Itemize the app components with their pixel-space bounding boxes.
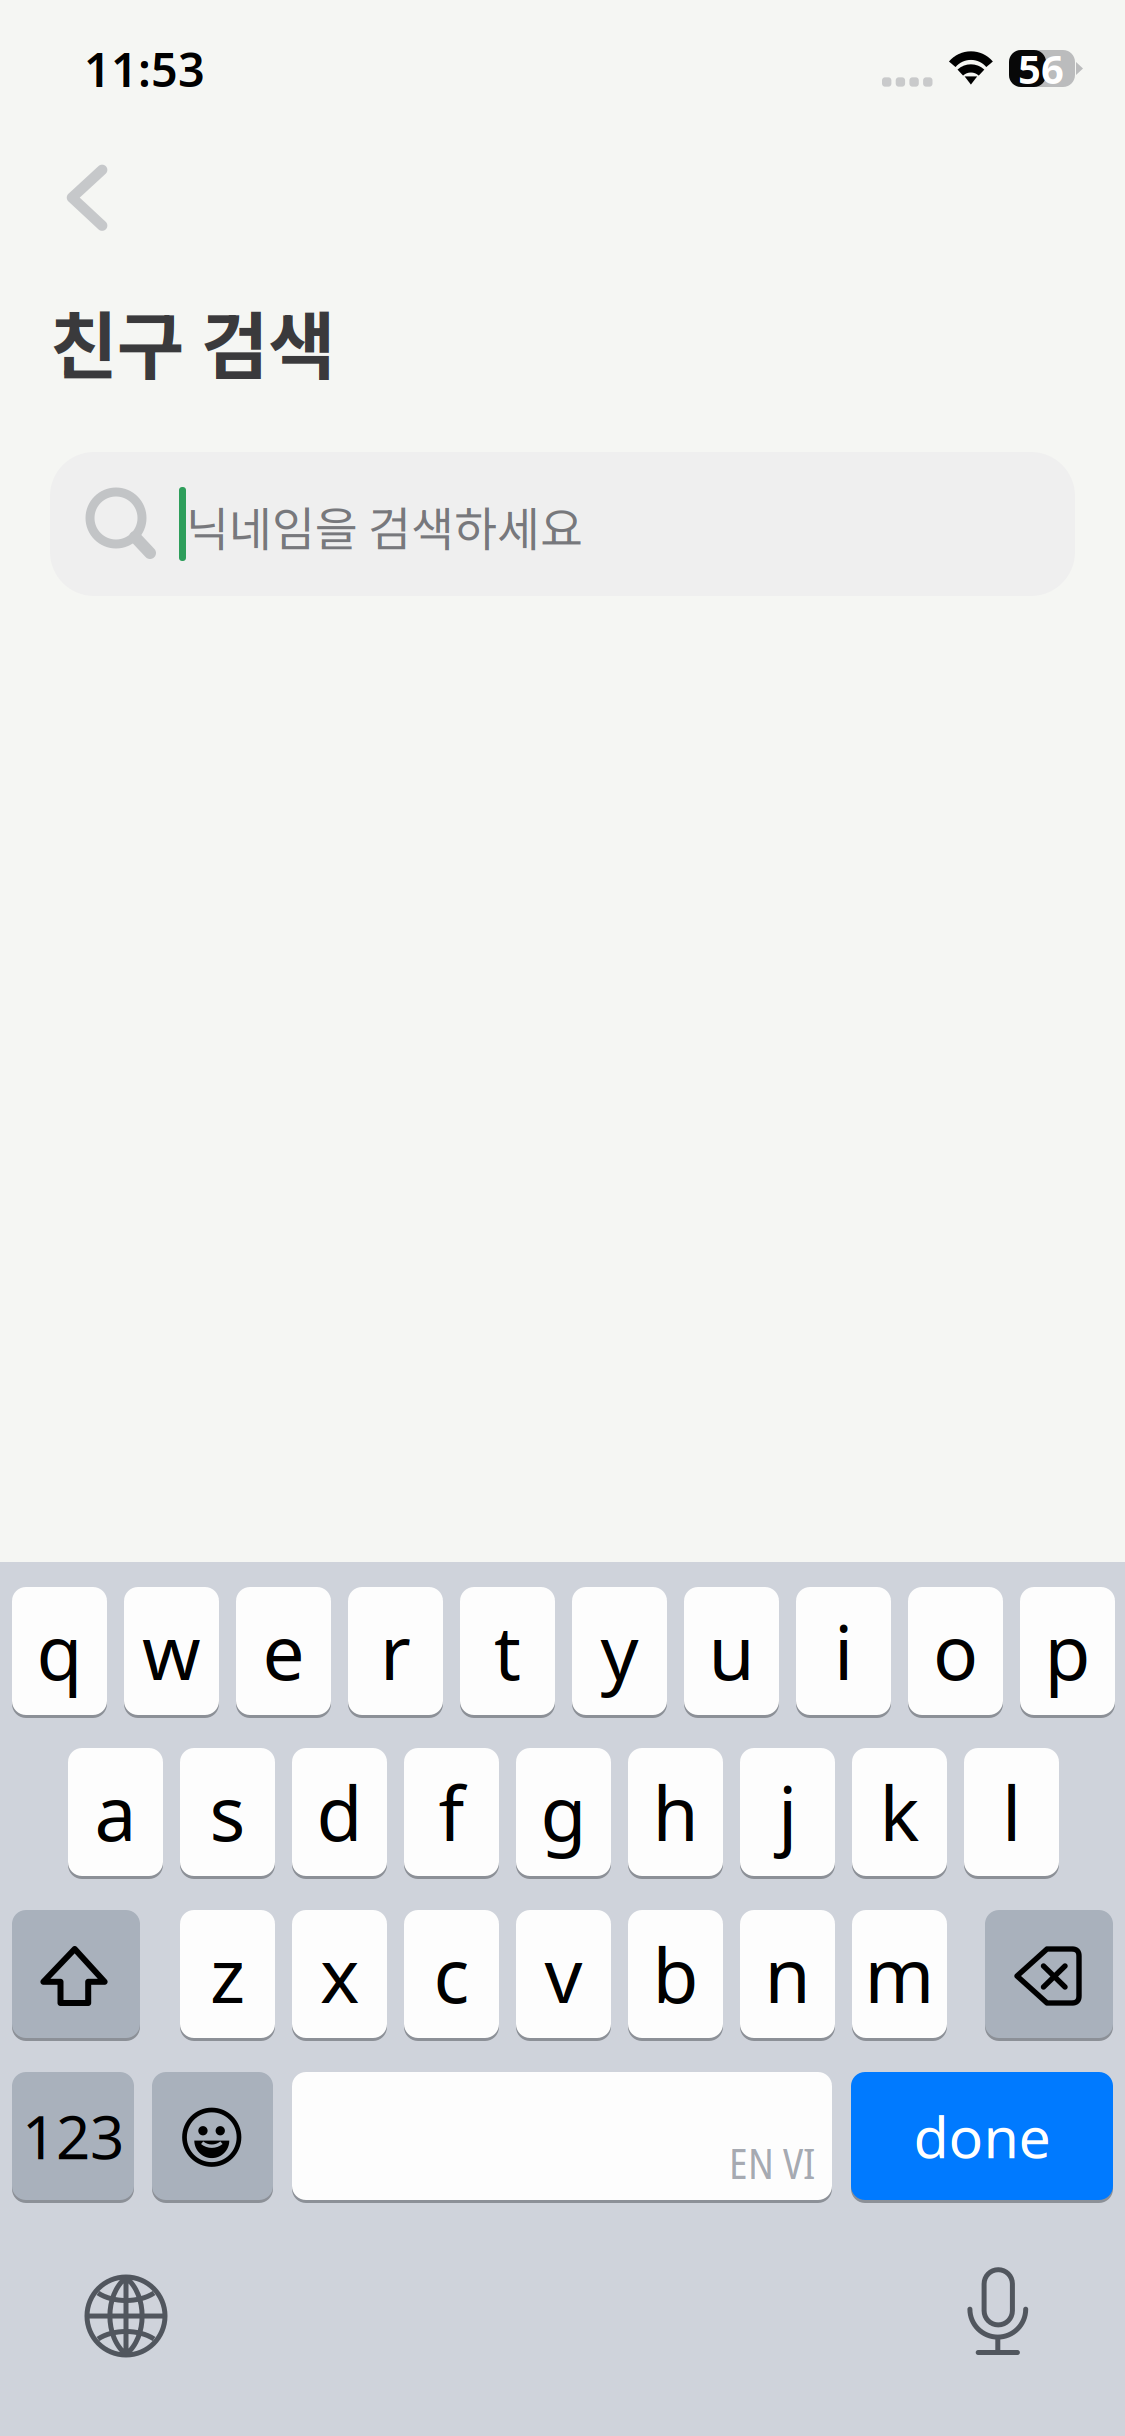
staticText: n	[764, 1924, 810, 2024]
staticText: y	[600, 1601, 638, 1701]
button[interactable]: o	[0, 0, 1125, 2436]
button[interactable]: b	[0, 0, 1125, 2436]
button[interactable]: t	[0, 0, 1125, 2436]
staticText: b	[652, 1924, 698, 2024]
button[interactable]: u	[0, 0, 1125, 2436]
button[interactable]: Delete	[0, 0, 1125, 2436]
button[interactable]: v	[0, 0, 1125, 2436]
button[interactable]: a	[0, 0, 1125, 2436]
button[interactable]: c	[0, 0, 1125, 2436]
staticText: s	[209, 1762, 245, 1862]
button[interactable]: m	[0, 0, 1125, 2436]
staticText: 친구 검색	[50, 288, 335, 394]
staticText: done	[913, 2098, 1050, 2174]
staticText: d	[316, 1762, 362, 1862]
staticText: 11:53	[84, 38, 205, 100]
staticText: w	[142, 1601, 201, 1701]
staticText: z	[210, 1924, 245, 2024]
button[interactable]: r	[0, 0, 1125, 2436]
button[interactable]: w	[0, 0, 1125, 2436]
button[interactable]: Switch keyboard	[0, 0, 1125, 2436]
button[interactable]: g	[0, 0, 1125, 2436]
staticText: l	[1002, 1762, 1021, 1862]
staticText: h	[652, 1762, 698, 1862]
staticText: p	[1044, 1601, 1090, 1701]
staticText: q	[36, 1601, 82, 1701]
button[interactable]: s	[0, 0, 1125, 2436]
button[interactable]: n	[0, 0, 1125, 2436]
button[interactable]: d	[0, 0, 1125, 2436]
staticText: g	[540, 1762, 586, 1862]
button[interactable]: Back	[0, 0, 1125, 2436]
staticText: k	[879, 1762, 919, 1862]
staticText: u	[708, 1601, 754, 1701]
staticText: f	[438, 1762, 464, 1862]
button[interactable]: z	[0, 0, 1125, 2436]
button[interactable]: k	[0, 0, 1125, 2436]
staticText: e	[262, 1601, 304, 1701]
button[interactable]: done	[0, 0, 1125, 2436]
button[interactable]: h	[0, 0, 1125, 2436]
staticText: 56	[1018, 42, 1064, 95]
button[interactable]: Dictate	[0, 0, 1125, 2436]
staticText: v	[544, 1924, 582, 2024]
staticText: t	[494, 1601, 521, 1701]
button[interactable]: e	[0, 0, 1125, 2436]
staticText: x	[320, 1924, 359, 2024]
staticText: m	[864, 1924, 934, 2024]
staticText: 닉네임을 검색하세요	[186, 492, 583, 560]
button[interactable]: Emoji	[0, 0, 1125, 2436]
button[interactable]: l	[0, 0, 1125, 2436]
staticText: i	[834, 1601, 853, 1701]
staticText: a	[94, 1762, 136, 1862]
button[interactable]: y	[0, 0, 1125, 2436]
staticText: r	[380, 1601, 411, 1701]
button[interactable]: i	[0, 0, 1125, 2436]
staticText: j	[778, 1762, 797, 1862]
button[interactable]: Space	[0, 0, 1125, 2436]
button[interactable]: q	[0, 0, 1125, 2436]
button[interactable]: j	[0, 0, 1125, 2436]
staticText: c	[433, 1924, 469, 2024]
button[interactable]: p	[0, 0, 1125, 2436]
button[interactable]: Shift	[0, 0, 1125, 2436]
button[interactable]: x	[0, 0, 1125, 2436]
button[interactable]: 123	[0, 0, 1125, 2436]
staticText: 123	[22, 2096, 124, 2176]
button[interactable]: f	[0, 0, 1125, 2436]
staticText: o	[933, 1601, 978, 1701]
staticText: EN VI	[729, 2135, 815, 2191]
